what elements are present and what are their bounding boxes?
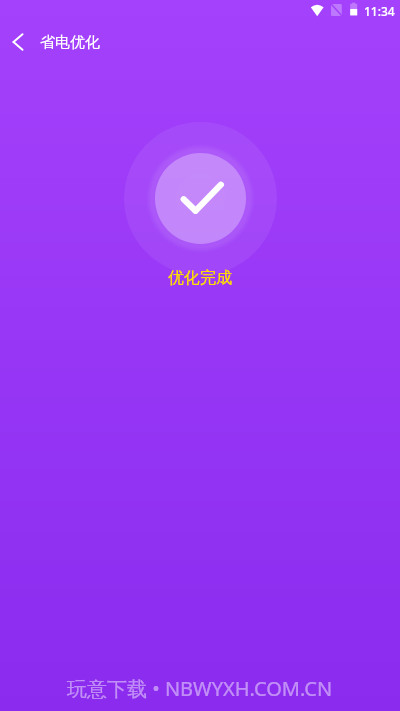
staticText: 优化完成	[168, 268, 232, 288]
staticText: 省电优化	[40, 33, 100, 52]
staticText: 11:34	[364, 3, 395, 19]
staticText: 玩意下载 • NBWYXH.COM.CN	[67, 675, 333, 702]
button[interactable]: Back	[0, 22, 40, 62]
